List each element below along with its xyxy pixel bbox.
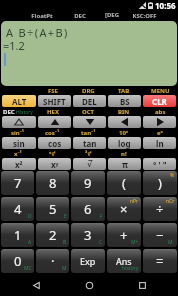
staticText: 4	[14, 200, 22, 218]
staticText: MENU	[151, 87, 170, 95]
staticText: SHIFT	[43, 96, 66, 107]
button[interactable]: Exp	[71, 249, 105, 273]
staticText: B	[63, 239, 67, 246]
staticText: 3	[84, 226, 92, 244]
staticText: DEC	[3, 108, 15, 116]
button[interactable]: 9	[71, 171, 105, 195]
staticText: ×	[120, 200, 128, 218]
button[interactable]: FloatPt	[31, 11, 53, 21]
staticText: MC	[24, 265, 32, 272]
staticText: F	[100, 213, 103, 220]
staticText: E	[64, 213, 67, 220]
button[interactable]: BS	[108, 95, 141, 107]
button[interactable]: tan	[73, 137, 106, 149]
staticText: CLR	[152, 96, 167, 107]
staticText: abs	[155, 108, 166, 116]
staticText: KSC:OFF	[132, 12, 157, 20]
staticText: n!	[121, 150, 127, 158]
button[interactable]: 8	[36, 171, 69, 195]
staticText: 8	[49, 174, 57, 192]
staticText: +	[120, 226, 128, 244]
button[interactable]: 0	[1, 249, 34, 273]
button[interactable]: Cursor up	[38, 116, 71, 128]
staticText: 10:56	[155, 0, 176, 11]
staticText: DEC	[74, 12, 86, 20]
staticText: ³√̅	[85, 150, 92, 158]
staticText: Ans	[116, 255, 132, 267]
staticText: ·	[51, 252, 55, 270]
staticText: nPr	[130, 198, 139, 205]
staticText: 5	[49, 200, 57, 218]
staticText: xʸ	[51, 159, 59, 170]
button[interactable]: 2	[36, 223, 69, 247]
button[interactable]: √̅	[73, 158, 106, 170]
staticText: =1.2	[3, 38, 25, 53]
staticText: M-	[168, 239, 175, 246]
staticText: 9	[84, 174, 92, 192]
button[interactable]: cos	[38, 137, 71, 149]
staticText: Exp	[80, 255, 96, 267]
staticText: ° ' "	[153, 159, 167, 170]
button[interactable]: sin	[2, 137, 36, 149]
button[interactable]: −	[143, 223, 177, 247]
staticText: [DEG]	[104, 11, 120, 21]
staticText: cos	[48, 138, 62, 149]
staticText: −	[156, 226, 164, 244]
button[interactable]: [DEG]	[104, 11, 120, 21]
staticText: 6	[84, 200, 92, 218]
staticText: 7	[14, 174, 22, 192]
button[interactable]: Page up	[2, 116, 36, 128]
button[interactable]: Cursor down	[73, 116, 106, 128]
staticText: A	[28, 239, 32, 246]
staticText: History	[16, 109, 33, 116]
button[interactable]: Back	[19, 274, 53, 296]
button[interactable]: (	[107, 171, 141, 195]
button[interactable]: ×	[107, 197, 141, 221]
button[interactable]: ln	[143, 137, 176, 149]
staticText: HEX	[47, 108, 59, 116]
staticText: tan⁻¹	[81, 129, 96, 137]
button[interactable]: x²	[2, 158, 36, 170]
staticText: 0	[14, 252, 22, 270]
staticText: %	[170, 172, 175, 179]
button[interactable]: CLR	[143, 95, 176, 107]
staticText: x⁻¹	[14, 150, 22, 158]
staticText: ˣ√̅	[49, 150, 56, 158]
button[interactable]: 6	[71, 197, 105, 221]
button[interactable]: ÷	[143, 197, 177, 221]
button[interactable]: log	[108, 137, 141, 149]
button[interactable]: Cursor left	[108, 116, 141, 128]
button[interactable]: 3	[71, 223, 105, 247]
button[interactable]: 7	[1, 171, 34, 195]
button[interactable]: π	[108, 158, 141, 170]
button[interactable]: )	[143, 171, 177, 195]
button[interactable]: ALT	[2, 95, 36, 107]
button[interactable]: ·	[36, 249, 69, 273]
staticText: FSE	[48, 87, 58, 95]
staticText: ln	[156, 138, 164, 149]
button[interactable]: Ans	[107, 249, 141, 273]
button[interactable]: ° ' "	[143, 158, 176, 170]
button[interactable]: 4	[1, 197, 34, 221]
staticText: DEL	[82, 96, 97, 107]
button[interactable]: SHIFT	[38, 95, 71, 107]
button[interactable]: 1	[1, 223, 34, 247]
button[interactable]: DEL	[73, 95, 106, 107]
button[interactable]: Recent apps	[125, 274, 159, 296]
staticText: sin⁻¹	[11, 129, 25, 137]
button[interactable]: xʸ	[38, 158, 71, 170]
staticText: 2	[49, 226, 57, 244]
staticText: ALT	[12, 96, 27, 107]
button[interactable]: KSC:OFF	[131, 11, 157, 21]
button[interactable]: +	[107, 223, 141, 247]
staticText: =	[156, 252, 164, 270]
button[interactable]: =	[143, 249, 177, 273]
staticText: log	[118, 138, 131, 149]
button[interactable]: Home	[72, 274, 106, 296]
button[interactable]: DEC	[73, 11, 87, 21]
staticText: x²	[15, 159, 23, 170]
staticText: cos⁻¹	[45, 129, 60, 137]
staticText: C	[99, 239, 103, 246]
button[interactable]: 5	[36, 197, 69, 221]
button[interactable]: Cursor right	[143, 116, 176, 128]
